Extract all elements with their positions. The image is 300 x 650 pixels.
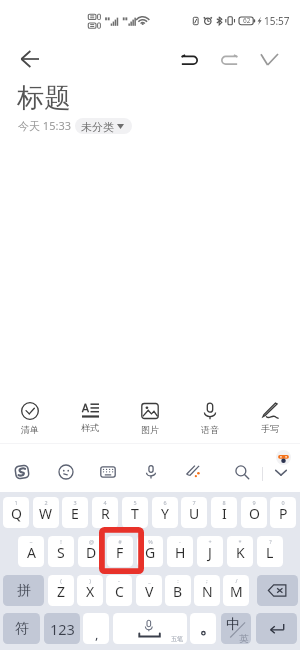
- staticText: -: [179, 538, 181, 545]
- staticText: M: [230, 582, 243, 601]
- staticText: 5: [133, 499, 137, 506]
- button[interactable]: 8: [211, 497, 237, 528]
- button[interactable]: 9: [241, 497, 267, 528]
- staticText: K: [236, 543, 245, 562]
- staticText: F: [116, 543, 124, 562]
- button[interactable]: #: [107, 536, 133, 567]
- button[interactable]: -: [167, 536, 193, 567]
- staticText: 图片: [141, 424, 159, 435]
- button[interactable]: 1: [3, 497, 29, 528]
- button[interactable]: Undo: [172, 42, 207, 77]
- staticText: ~: [29, 538, 33, 545]
- staticText: N: [202, 582, 213, 601]
- staticText: 中: [226, 616, 240, 634]
- staticText: Y: [161, 504, 169, 523]
- staticText: -: [118, 577, 120, 584]
- button[interactable]: 拼: [3, 575, 44, 606]
- button[interactable]: Redo: [212, 42, 247, 77]
- button[interactable]: Switch Chinese English: [221, 613, 251, 644]
- button[interactable]: Hide keyboard: [266, 452, 296, 492]
- staticText: C: [115, 582, 124, 601]
- button[interactable]: 6: [152, 497, 178, 528]
- staticText: S: [57, 543, 65, 562]
- staticText: 拼: [17, 582, 31, 600]
- button[interactable]: ~: [18, 536, 44, 567]
- staticText: U: [189, 504, 200, 523]
- button[interactable]: 图片: [120, 399, 180, 437]
- button[interactable]: @: [78, 536, 104, 567]
- staticText: Q: [11, 504, 22, 523]
- button[interactable]: 7: [181, 497, 207, 528]
- button[interactable]: :: [165, 575, 191, 606]
- staticText: A: [27, 543, 36, 562]
- button[interactable]: 符: [3, 613, 40, 644]
- staticText: D: [86, 543, 97, 562]
- button[interactable]: Period: [190, 613, 216, 644]
- staticText: H: [175, 543, 186, 562]
- staticText: 7: [192, 499, 196, 506]
- button[interactable]: ?: [257, 536, 283, 567]
- button[interactable]: Enter: [256, 613, 297, 644]
- button[interactable]: Emoji: [49, 452, 83, 492]
- staticText: 15:57: [264, 14, 290, 28]
- staticText: ,: [95, 625, 99, 643]
- staticText: 1: [14, 499, 18, 506]
- staticText: 62: [243, 16, 251, 25]
- button[interactable]: 手写: [240, 399, 300, 437]
- staticText: !: [60, 538, 62, 545]
- button[interactable]: Done: [252, 42, 287, 77]
- button[interactable]: 语音: [180, 399, 240, 437]
- button[interactable]: Back: [13, 42, 47, 76]
- button[interactable]: 未分类: [75, 118, 132, 134]
- staticText: J: [208, 543, 212, 562]
- staticText: 未分类: [81, 120, 114, 134]
- staticText: @: [89, 538, 94, 545]
- button[interactable]: *: [227, 536, 253, 567]
- staticText: I: [222, 504, 227, 523]
- button[interactable]: +: [197, 536, 223, 567]
- button[interactable]: _: [136, 575, 162, 606]
- button[interactable]: !: [48, 536, 74, 567]
- button[interactable]: 3: [62, 497, 88, 528]
- staticText: 9: [252, 499, 256, 506]
- button[interactable]: Backspace: [257, 575, 298, 606]
- staticText: R: [101, 504, 110, 523]
- staticText: 符: [15, 620, 29, 638]
- button[interactable]: -: [106, 575, 132, 606]
- button[interactable]: Space: [113, 613, 187, 644]
- button[interactable]: Sogou input: [5, 452, 39, 492]
- button[interactable]: 样式: [60, 399, 120, 437]
- staticText: Z: [57, 582, 66, 601]
- button[interactable]: 清单: [0, 399, 60, 437]
- staticText: #: [118, 538, 122, 545]
- staticText: :: [177, 577, 179, 584]
- staticText: P: [279, 504, 288, 523]
- button[interactable]: (: [48, 575, 74, 606]
- button[interactable]: /: [223, 575, 249, 606]
- staticText: _: [148, 577, 151, 584]
- button[interactable]: Keyboard layout: [91, 452, 125, 492]
- button[interactable]: ;: [194, 575, 220, 606]
- staticText: 五笔: [171, 635, 183, 643]
- staticText: 6: [163, 499, 167, 506]
- staticText: L: [266, 543, 274, 562]
- staticText: 英: [239, 633, 249, 644]
- staticText: 手写: [261, 423, 279, 434]
- button[interactable]: Search: [225, 452, 259, 492]
- button[interactable]: %: [137, 536, 163, 567]
- staticText: 4: [103, 499, 107, 506]
- button[interactable]: Comma: [83, 613, 109, 644]
- staticText: E: [71, 504, 79, 523]
- staticText: T: [131, 504, 139, 523]
- button[interactable]: 4: [92, 497, 118, 528]
- staticText: G: [145, 543, 156, 562]
- button[interactable]: ): [77, 575, 103, 606]
- button[interactable]: Handwriting: [176, 452, 210, 492]
- staticText: 123: [50, 619, 75, 639]
- button[interactable]: Voice input: [134, 452, 168, 492]
- staticText: X: [86, 582, 95, 601]
- button[interactable]: 2: [33, 497, 59, 528]
- button[interactable]: 0: [270, 497, 296, 528]
- button[interactable]: 123: [44, 613, 80, 644]
- button[interactable]: 5: [122, 497, 148, 528]
